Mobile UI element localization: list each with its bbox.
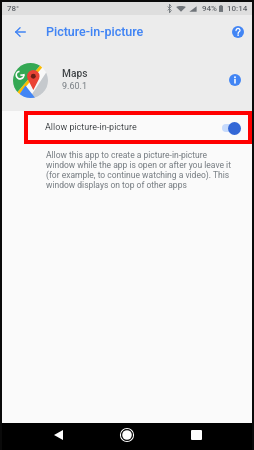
staticText: 78° <box>7 4 20 13</box>
button[interactable]: Recents <box>184 423 208 447</box>
button[interactable]: Maps <box>2 48 252 111</box>
button[interactable]: Allow picture-in-picture <box>2 111 252 144</box>
button[interactable]: Back <box>8 20 32 44</box>
staticText: Allow picture-in-picture <box>45 122 222 133</box>
staticText: Allow this app to create a picture-in-pi… <box>46 150 208 160</box>
staticText: 94% <box>202 4 217 13</box>
button[interactable]: Help <box>229 23 247 41</box>
staticText: 10:14 <box>227 4 248 13</box>
staticText: Maps <box>62 68 88 80</box>
button[interactable]: App info <box>226 71 244 89</box>
staticText: (for example, to continue watching a vid… <box>46 170 230 180</box>
staticText: 9.60.1 <box>62 81 87 92</box>
staticText: window displays on top of other apps <box>46 180 187 190</box>
staticText: window while the app is open or after yo… <box>46 160 231 170</box>
button[interactable]: Home <box>115 423 139 447</box>
button[interactable]: Back <box>46 423 70 447</box>
staticText: Picture-in-picture <box>46 24 144 39</box>
